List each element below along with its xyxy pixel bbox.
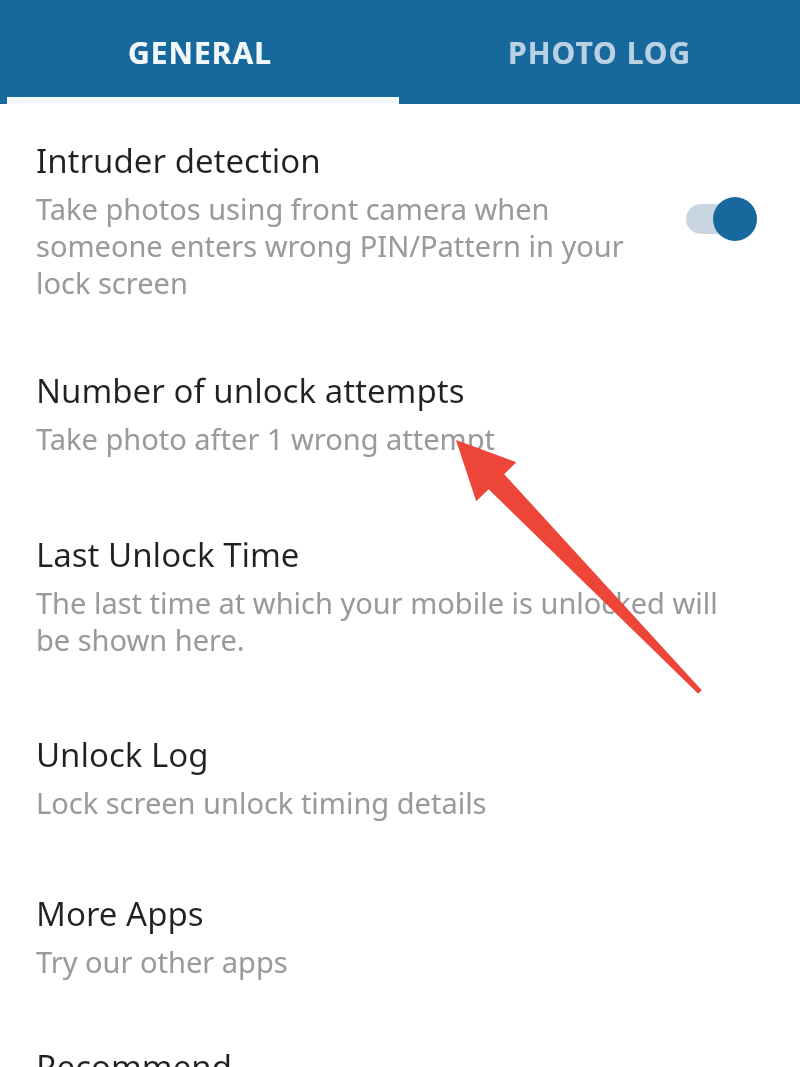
button[interactable]: More Apps [0,891,800,981]
button[interactable]: Unlock Log [0,732,800,822]
button[interactable]: Last Unlock Time [0,532,800,660]
button[interactable] [686,197,757,241]
button[interactable]: GENERAL [0,0,400,104]
staticText: Intruder detection [36,138,321,183]
staticText: Number of unlock attempts [36,368,465,413]
button[interactable]: Number of unlock attempts [0,368,800,458]
staticText: Take photos using front camera when some… [36,189,624,303]
staticText: Take photo after 1 wrong attempt [36,419,496,458]
staticText: The last time at which your mobile is un… [36,583,718,660]
staticText: GENERAL [128,32,272,73]
staticText: PHOTO LOG [508,32,692,73]
button[interactable]: Intruder detection [0,138,800,303]
staticText: Try our other apps [36,942,288,981]
button[interactable]: Recommend [0,1044,800,1067]
staticText: Unlock Log [36,732,209,777]
staticText: More Apps [36,891,204,936]
staticText: Last Unlock Time [36,532,300,577]
staticText: Recommend [36,1044,232,1067]
staticText: Lock screen unlock timing details [36,783,487,822]
button[interactable]: PHOTO LOG [400,0,800,104]
